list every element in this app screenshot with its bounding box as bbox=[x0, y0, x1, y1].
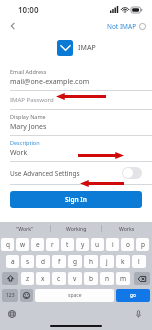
button[interactable]: Works bbox=[102, 222, 152, 235]
button[interactable]: Use Advanced Settings bbox=[0, 162, 152, 184]
staticText: n bbox=[105, 274, 110, 283]
staticText: l bbox=[138, 257, 140, 266]
staticText: w bbox=[20, 240, 26, 249]
button[interactable]: i bbox=[106, 238, 119, 251]
button[interactable]: d bbox=[36, 255, 50, 268]
staticText: Sign In bbox=[65, 195, 87, 204]
staticText: Works bbox=[119, 225, 135, 232]
staticText: Work bbox=[10, 148, 28, 158]
button[interactable]: u bbox=[91, 238, 104, 251]
button[interactable]: Shift bbox=[2, 272, 18, 285]
staticText: h bbox=[89, 257, 94, 266]
staticText: IMAP Password bbox=[10, 96, 54, 104]
staticText: t bbox=[66, 240, 69, 249]
staticText: u bbox=[95, 240, 100, 249]
button[interactable]: Sign In bbox=[10, 191, 142, 208]
button[interactable]: Emoji bbox=[20, 289, 33, 302]
button[interactable]: k bbox=[116, 255, 130, 268]
button[interactable]: t bbox=[61, 238, 74, 251]
staticText: Email Address bbox=[10, 68, 47, 75]
staticText: p bbox=[141, 240, 145, 249]
button[interactable]: m bbox=[116, 272, 130, 285]
button[interactable]: Dictation bbox=[132, 308, 144, 320]
staticText: Description bbox=[10, 139, 40, 146]
button[interactable]: Not IMAP bbox=[107, 22, 146, 31]
staticText: y bbox=[81, 240, 85, 249]
button[interactable]: Back bbox=[4, 18, 22, 34]
button[interactable]: Working bbox=[51, 222, 101, 235]
button[interactable]: y bbox=[76, 238, 89, 251]
button[interactable]: h bbox=[84, 255, 98, 268]
button[interactable]: Display Name bbox=[0, 110, 152, 135]
button[interactable]: o bbox=[121, 238, 134, 251]
staticText: IMAP bbox=[78, 43, 96, 53]
button[interactable]: l bbox=[132, 255, 146, 268]
button[interactable]: e bbox=[31, 238, 44, 251]
staticText: o bbox=[126, 240, 130, 249]
staticText: space bbox=[68, 292, 82, 299]
button[interactable]: b bbox=[84, 272, 98, 285]
staticText: c bbox=[57, 274, 61, 283]
button[interactable]: go bbox=[116, 289, 150, 302]
staticText: i bbox=[112, 240, 114, 249]
staticText: r bbox=[51, 240, 54, 249]
staticText: mail@one-example.com bbox=[10, 77, 90, 87]
button[interactable]: n bbox=[100, 272, 114, 285]
staticText: z bbox=[26, 274, 30, 283]
button[interactable]: q bbox=[1, 238, 14, 251]
button[interactable]: Backspace bbox=[134, 272, 150, 285]
button[interactable]: z bbox=[21, 272, 34, 285]
staticText: b bbox=[89, 274, 93, 283]
staticText: d bbox=[41, 257, 45, 266]
staticText: Mary Jones bbox=[10, 122, 47, 132]
button[interactable]: g bbox=[68, 255, 82, 268]
button[interactable]: "Work" bbox=[0, 222, 50, 235]
button[interactable]: a bbox=[6, 255, 19, 268]
button[interactable]: IMAP Password bbox=[0, 91, 152, 109]
button[interactable]: c bbox=[52, 272, 66, 285]
staticText: a bbox=[11, 257, 15, 266]
staticText: k bbox=[121, 257, 125, 266]
button[interactable]: Description bbox=[0, 136, 152, 161]
button[interactable]: j bbox=[100, 255, 114, 268]
staticText: s bbox=[26, 257, 30, 266]
staticText: Display Name bbox=[10, 113, 46, 120]
button[interactable]: w bbox=[16, 238, 29, 251]
staticText: q bbox=[6, 240, 10, 249]
button[interactable]: Change keyboard bbox=[6, 308, 18, 320]
button[interactable]: v bbox=[68, 272, 82, 285]
staticText: x bbox=[41, 274, 45, 283]
staticText: go bbox=[130, 292, 137, 299]
staticText: Use Advanced Settings bbox=[10, 169, 80, 178]
staticText: 123 bbox=[6, 292, 15, 299]
button[interactable]: space bbox=[35, 289, 114, 302]
button[interactable]: f bbox=[52, 255, 66, 268]
staticText: g bbox=[73, 257, 77, 266]
button[interactable]: 123 bbox=[2, 289, 18, 302]
staticText: e bbox=[36, 240, 40, 249]
staticText: Working bbox=[66, 225, 87, 232]
staticText: m bbox=[120, 274, 127, 283]
staticText: j bbox=[106, 257, 108, 266]
button[interactable]: x bbox=[36, 272, 50, 285]
staticText: "Work" bbox=[16, 225, 34, 232]
button[interactable]: Email Address bbox=[0, 65, 152, 90]
staticText: 10:00 bbox=[18, 4, 39, 15]
staticText: Not IMAP bbox=[107, 22, 137, 31]
staticText: v bbox=[73, 274, 77, 283]
button[interactable]: r bbox=[46, 238, 59, 251]
button[interactable]: p bbox=[136, 238, 149, 251]
button[interactable]: s bbox=[21, 255, 34, 268]
staticText: f bbox=[58, 257, 61, 266]
